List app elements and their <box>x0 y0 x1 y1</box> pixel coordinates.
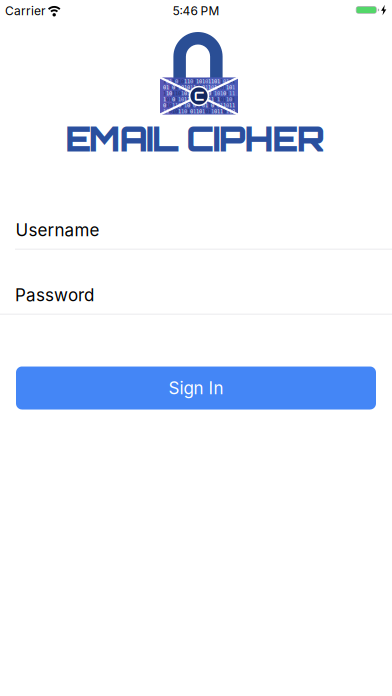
staticText: Sign In <box>168 378 223 398</box>
staticText: C <box>194 88 204 104</box>
staticText: 11 101 1101 <box>163 78 235 84</box>
staticText: 1 0 10 011 10 <box>163 108 235 114</box>
staticText: 1 1 01 101 <box>163 84 235 90</box>
staticText: 01 0 0 0 01 <box>163 78 235 84</box>
staticText: 1 0 110 11 <box>163 96 235 102</box>
staticText: 1 110 0 1 1 <box>163 90 235 96</box>
staticText: 10 01 0 1 10 <box>163 96 235 102</box>
staticText: 1 1 10 1 1 01 <box>163 78 235 84</box>
staticText: 11 10 1 1 1 1 <box>163 108 235 114</box>
staticText: EMAIL CIPHER <box>65 117 325 160</box>
staticText: 1 1 1 0 1 <box>163 84 235 90</box>
staticText: 11 1 0 0 01 0 <box>163 102 235 108</box>
staticText: Password <box>15 285 94 305</box>
staticText: Carrier <box>5 4 46 18</box>
staticText: Username <box>15 220 99 240</box>
staticText: 010 1 01 0 <box>163 108 235 114</box>
staticText: 01 1 1 1 0 01 1 <box>163 96 235 102</box>
staticText: 10 0 0 1 10 0 <box>163 90 235 96</box>
staticText: 01 0 010 1 0 1 1 10 <box>163 84 235 90</box>
staticText: 0 0 0 1 0 1 11 <box>163 102 235 108</box>
staticText: 5:46 PM <box>172 4 219 18</box>
staticText: 1 11 1 101 11 <box>163 90 235 96</box>
staticText: 10 1 1 11 1 1 <box>163 102 235 108</box>
